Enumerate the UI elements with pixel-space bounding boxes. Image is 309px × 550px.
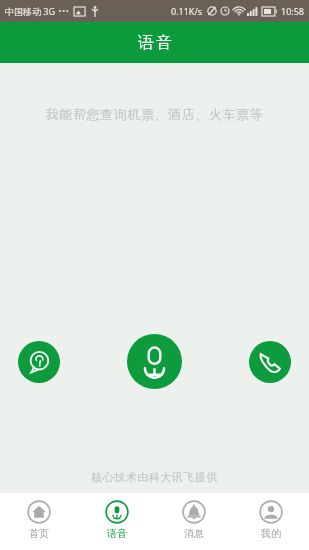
staticText: 中国移动 3G xyxy=(5,5,56,17)
button[interactable]: 我的 xyxy=(232,493,309,550)
staticText: 语音 xyxy=(137,33,173,53)
button[interactable]: Help xyxy=(18,341,60,383)
staticText: 我的 xyxy=(261,527,281,540)
button[interactable]: 首页 xyxy=(0,493,78,550)
staticText: 0.11K/s xyxy=(171,5,203,17)
staticText: 我能帮您查询机票、酒店、火车票等 xyxy=(0,106,309,122)
button[interactable]: 语音 xyxy=(78,493,155,550)
staticText: 核心技术由科大讯飞提供 xyxy=(0,470,309,484)
staticText: 10:58 xyxy=(281,5,305,17)
staticText: 消息 xyxy=(184,527,204,540)
button[interactable]: Start voice input xyxy=(127,334,182,389)
staticText: 首页 xyxy=(29,527,49,540)
button[interactable]: Call xyxy=(249,341,291,383)
staticText: 语音 xyxy=(107,527,127,540)
button[interactable]: 消息 xyxy=(155,493,232,550)
